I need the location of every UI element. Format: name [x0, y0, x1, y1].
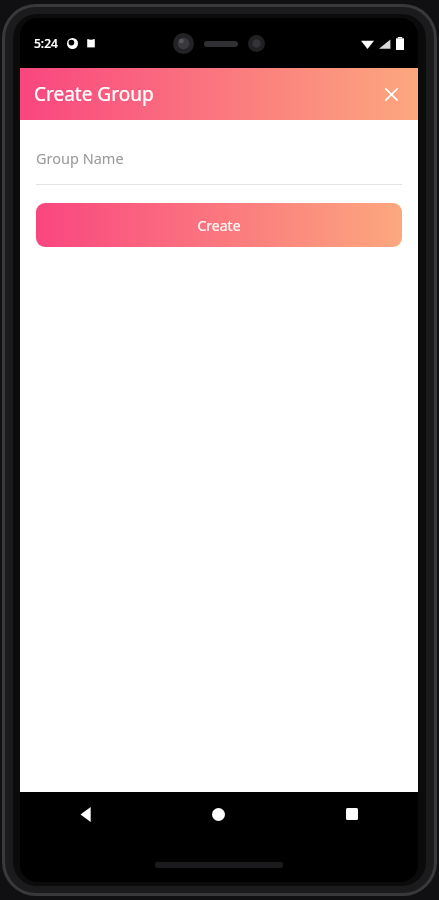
staticText: Create Group [34, 81, 154, 107]
button[interactable]: Group Name [36, 142, 402, 185]
button[interactable]: Home [152, 792, 285, 836]
staticText: Create [197, 216, 241, 235]
staticText: 5:24 [34, 35, 58, 51]
button[interactable]: Back [20, 792, 152, 836]
button[interactable]: Recent apps [285, 792, 418, 836]
button[interactable]: Create [36, 203, 402, 247]
staticText: Group Name [36, 148, 124, 168]
button[interactable]: Close [372, 75, 410, 113]
